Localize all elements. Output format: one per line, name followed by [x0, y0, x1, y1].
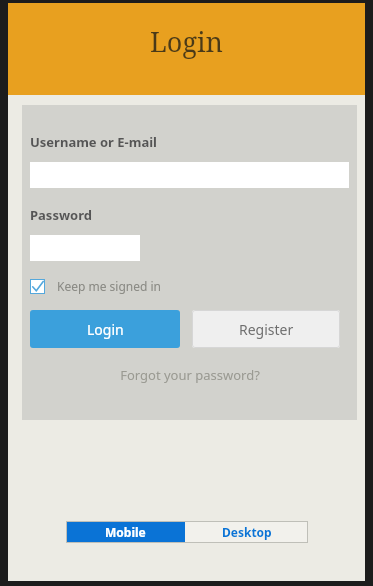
button[interactable]: Mobile: [66, 521, 185, 543]
button[interactable]: Login: [30, 310, 180, 348]
staticText: Username or E-mail: [30, 133, 157, 151]
staticText: Login: [87, 320, 124, 339]
button[interactable]: Desktop: [185, 521, 308, 543]
staticText: Register: [239, 320, 294, 339]
staticText: Keep me signed in: [57, 278, 161, 294]
staticText: Desktop: [222, 524, 272, 540]
staticText: Login: [150, 23, 223, 60]
staticText: Password: [30, 206, 92, 224]
button[interactable]: Register: [192, 310, 340, 348]
staticText: Forgot your password?: [120, 366, 260, 384]
staticText: Mobile: [105, 524, 146, 540]
button[interactable]: Forgot your password?: [30, 366, 349, 384]
button[interactable]: Keep me signed in: [30, 278, 161, 294]
